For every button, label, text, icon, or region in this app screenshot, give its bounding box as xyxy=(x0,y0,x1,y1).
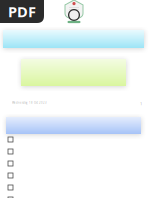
staticText: Wednesday, 18 Oct 2023 xyxy=(12,101,47,104)
button[interactable]: PDF document xyxy=(0,0,44,23)
staticText: PDF xyxy=(8,2,36,21)
staticText: 1 xyxy=(140,101,142,106)
